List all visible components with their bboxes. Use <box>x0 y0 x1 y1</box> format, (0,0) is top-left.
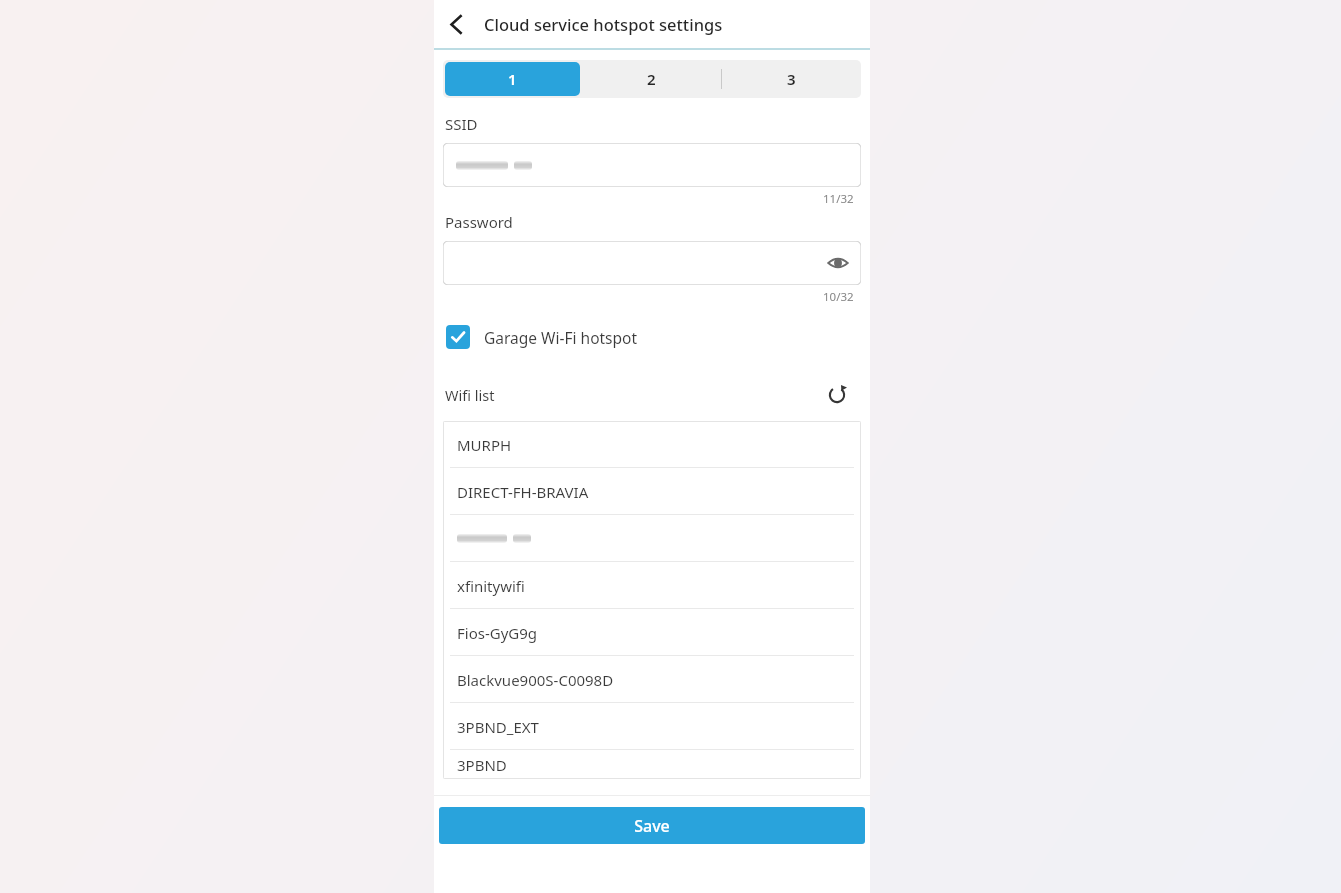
staticText: 3 <box>787 69 796 89</box>
staticText: 3PBND_EXT <box>457 717 539 737</box>
button[interactable]: Garage Wi-Fi hotspot <box>443 325 861 349</box>
staticText: 11/32 <box>823 191 854 207</box>
staticText: Garage Wi-Fi hotspot <box>484 327 638 348</box>
button[interactable]: Show password <box>823 248 853 278</box>
staticText: xfinitywifi <box>457 576 525 596</box>
staticText: Cloud service hotspot settings <box>484 13 723 35</box>
button[interactable]: MURPH <box>443 421 861 468</box>
staticText: Save <box>634 815 670 837</box>
staticText: Blackvue900S-C0098D <box>457 670 614 690</box>
staticText: Fios-GyG9g <box>457 623 538 643</box>
button[interactable]: 3PBND_EXT <box>443 703 861 750</box>
button[interactable] <box>443 143 861 187</box>
button[interactable]: xfinitywifi <box>443 562 861 609</box>
staticText: Wifi list <box>445 385 495 405</box>
button[interactable]: DIRECT-FH-BRAVIA <box>443 468 861 515</box>
button[interactable]: 3PBND <box>443 750 861 779</box>
button[interactable]: Show password <box>443 241 861 285</box>
staticText: 1 <box>508 69 517 89</box>
button[interactable]: 1 <box>445 62 580 96</box>
staticText: 3PBND <box>457 755 507 775</box>
staticText: 2 <box>647 69 656 89</box>
staticText: 10/32 <box>823 289 854 305</box>
staticText: SSID <box>445 114 478 134</box>
button[interactable]: Refresh <box>821 379 853 411</box>
staticText: Password <box>445 212 513 232</box>
button[interactable]: Save <box>439 807 865 844</box>
staticText: DIRECT-FH-BRAVIA <box>457 482 589 502</box>
button[interactable]: 3 <box>722 60 861 98</box>
staticText: MURPH <box>457 435 512 455</box>
button[interactable]: Fios-GyG9g <box>443 609 861 656</box>
button[interactable] <box>443 515 861 562</box>
button[interactable]: Back <box>434 2 478 46</box>
button[interactable]: 2 <box>582 60 721 98</box>
button[interactable]: Blackvue900S-C0098D <box>443 656 861 703</box>
